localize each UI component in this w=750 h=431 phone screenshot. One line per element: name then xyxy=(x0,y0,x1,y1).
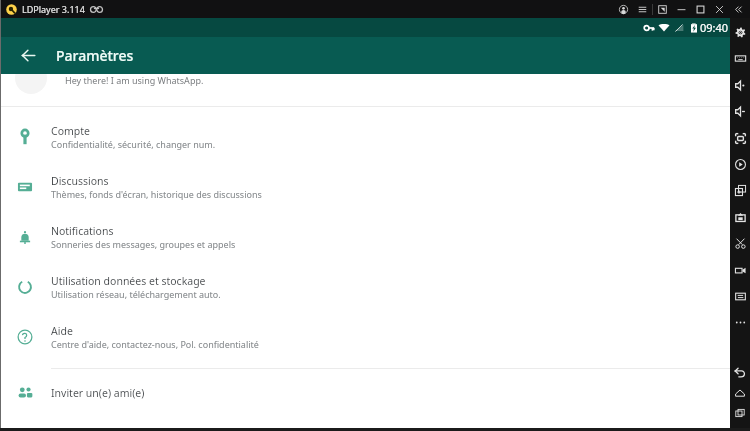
staticText: Paramètres xyxy=(56,46,134,65)
staticText: Confidentialité, sécurité, changer num. xyxy=(51,138,216,150)
button[interactable]: Full screen xyxy=(730,125,750,151)
button[interactable]: Compte xyxy=(0,112,730,162)
button[interactable]: Back xyxy=(14,37,42,74)
staticText: Utilisation réseau, téléchargement auto. xyxy=(51,288,221,300)
staticText: Aide xyxy=(51,324,73,338)
button[interactable]: Minimize xyxy=(672,0,691,18)
button[interactable]: Volume down xyxy=(730,98,750,124)
button[interactable]: Record macro xyxy=(730,151,750,177)
button[interactable]: Cut xyxy=(730,230,750,256)
button[interactable]: Multi instance xyxy=(730,177,750,203)
button[interactable]: Inviter un(e) ami(e) xyxy=(0,368,730,418)
button[interactable]: Recent apps xyxy=(730,400,750,426)
button[interactable]: Resize xyxy=(653,0,672,18)
button[interactable]: Home xyxy=(730,380,750,406)
button[interactable]: Notifications xyxy=(0,212,730,262)
staticText: Thèmes, fonds d'écran, historique des di… xyxy=(51,188,262,200)
button[interactable]: Shake xyxy=(730,204,750,230)
button[interactable]: Back xyxy=(730,360,750,386)
button[interactable]: Video record xyxy=(730,257,750,283)
button[interactable]: Close xyxy=(710,0,729,18)
staticText: Centre d'aide, contactez-nous, Pol. conf… xyxy=(51,338,259,350)
button[interactable]: Discussions xyxy=(0,162,730,212)
button[interactable]: Account xyxy=(614,0,633,18)
staticText: LDPlayer 3.114 xyxy=(22,3,85,15)
button[interactable]: Hey there! I am using WhatsApp. xyxy=(0,62,730,102)
staticText: Compte xyxy=(51,124,90,138)
staticText: Utilisation données et stockage xyxy=(51,274,206,288)
button[interactable]: More xyxy=(730,309,750,335)
button[interactable]: Keyboard xyxy=(730,45,750,71)
button[interactable]: Aide xyxy=(0,312,730,362)
button[interactable]: Maximize xyxy=(691,0,710,18)
button[interactable]: Settings xyxy=(730,19,750,45)
button[interactable]: Utilisation données et stockage xyxy=(0,262,730,312)
staticText: Discussions xyxy=(51,174,109,188)
staticText: Notifications xyxy=(51,224,114,238)
staticText: Inviter un(e) ami(e) xyxy=(51,386,145,400)
staticText: 09:40 xyxy=(700,20,729,35)
staticText: Hey there! I am using WhatsApp. xyxy=(65,74,204,86)
staticText: Sonneries des messages, groupes et appel… xyxy=(51,238,236,250)
button[interactable]: Volume up xyxy=(730,72,750,98)
button[interactable]: Menu xyxy=(633,0,652,18)
button[interactable]: Sync xyxy=(730,283,750,309)
button[interactable]: Collapse sidebar xyxy=(729,0,748,18)
